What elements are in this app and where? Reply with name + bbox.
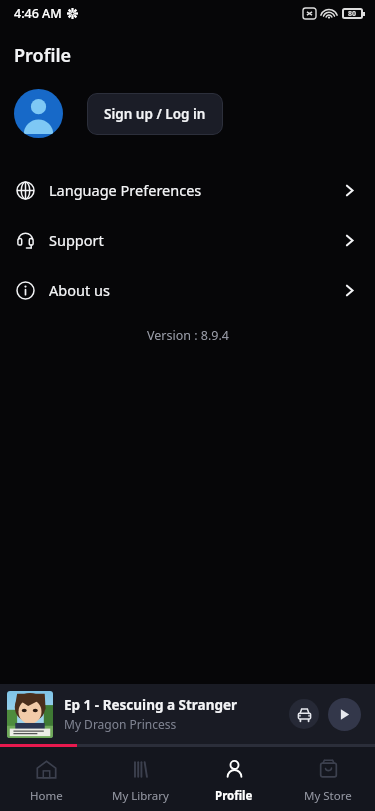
staticText: Support (49, 230, 342, 250)
button[interactable]: My Library (93, 747, 187, 811)
button[interactable]: Language Preferences (0, 165, 375, 215)
button[interactable]: Profile (187, 747, 281, 811)
staticText: Version : 8.9.4 (147, 327, 229, 344)
staticText: Home (30, 788, 63, 804)
button[interactable]: About us (0, 265, 375, 315)
staticText: Ep 1 - Rescuing a Stranger (64, 696, 238, 714)
button[interactable]: Ep 1 - Rescuing a Stranger (0, 684, 375, 744)
button[interactable]: Home (0, 747, 93, 811)
staticText: Profile (14, 43, 72, 68)
staticText: Language Preferences (49, 180, 342, 200)
button[interactable]: Car mode (289, 699, 319, 729)
button[interactable]: Profile picture (14, 89, 63, 138)
staticText: About us (49, 280, 342, 300)
button[interactable]: Support (0, 215, 375, 265)
staticText: 4:46 AM (14, 5, 62, 22)
button[interactable]: Sign up / Log in (87, 93, 223, 135)
staticText: Sign up / Log in (104, 105, 206, 123)
staticText: My Store (304, 788, 352, 804)
staticText: Profile (215, 788, 253, 804)
staticText: 80 (348, 9, 357, 19)
button[interactable]: Play (328, 698, 361, 731)
button[interactable]: My Store (281, 747, 375, 811)
staticText: My Library (112, 788, 169, 804)
staticText: My Dragon Princess (64, 716, 177, 732)
